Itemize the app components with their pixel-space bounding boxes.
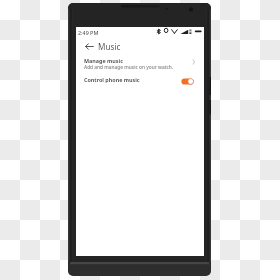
button[interactable]: Control phone music xyxy=(179,74,196,87)
staticText: Manage music xyxy=(84,57,123,64)
staticText: 2:49 PM xyxy=(78,29,99,36)
staticText: Music xyxy=(98,41,121,52)
staticText: Add and manage music on your watch. xyxy=(84,64,174,71)
button[interactable]: Back xyxy=(82,39,96,53)
button[interactable]: Control phone music xyxy=(76,73,204,87)
button[interactable]: Manage music xyxy=(76,54,204,71)
staticText: Control phone music xyxy=(84,76,140,83)
